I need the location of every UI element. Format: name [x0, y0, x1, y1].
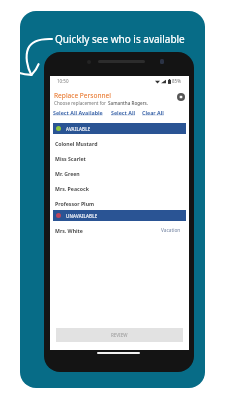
button[interactable]: Select All Available: [53, 109, 103, 116]
button[interactable]: Miss Scarlet: [50, 151, 189, 166]
button[interactable]: Professor Plum: [50, 196, 189, 211]
button[interactable]: Mr. Green: [50, 166, 189, 181]
staticText: Replace Personnel: [54, 91, 112, 100]
button[interactable]: Select All: [111, 109, 136, 116]
button[interactable]: Mrs. White: [50, 223, 189, 238]
staticText: AVAILABLE: [66, 126, 91, 132]
staticText: Samantha Rogers.: [108, 100, 149, 106]
staticText: Select All Available: [53, 109, 103, 116]
staticText: Mr. Green: [55, 170, 80, 177]
staticText: Choose replacement for: [54, 100, 108, 106]
staticText: Vacation: [161, 227, 181, 234]
button[interactable]: Colonel Mustard: [50, 136, 189, 151]
staticText: Quickly see who is available: [55, 32, 185, 46]
button[interactable]: Mrs. Peacock: [50, 181, 189, 196]
button[interactable]: REVIEW: [56, 328, 183, 342]
staticText: Clear All: [142, 109, 164, 116]
button[interactable]: Clear All: [142, 109, 164, 116]
staticText: REVIEW: [111, 332, 128, 338]
button[interactable]: Close: [177, 93, 185, 101]
staticText: UNAVAILABLE: [66, 213, 98, 219]
staticText: Miss Scarlet: [55, 155, 86, 162]
staticText: Select All: [111, 109, 136, 116]
staticText: Mrs. White: [55, 227, 83, 234]
staticText: 85%: [172, 78, 181, 84]
staticText: Colonel Mustard: [55, 140, 98, 147]
staticText: 10:50: [57, 78, 69, 84]
staticText: Mrs. Peacock: [55, 185, 89, 192]
staticText: Professor Plum: [55, 200, 95, 207]
